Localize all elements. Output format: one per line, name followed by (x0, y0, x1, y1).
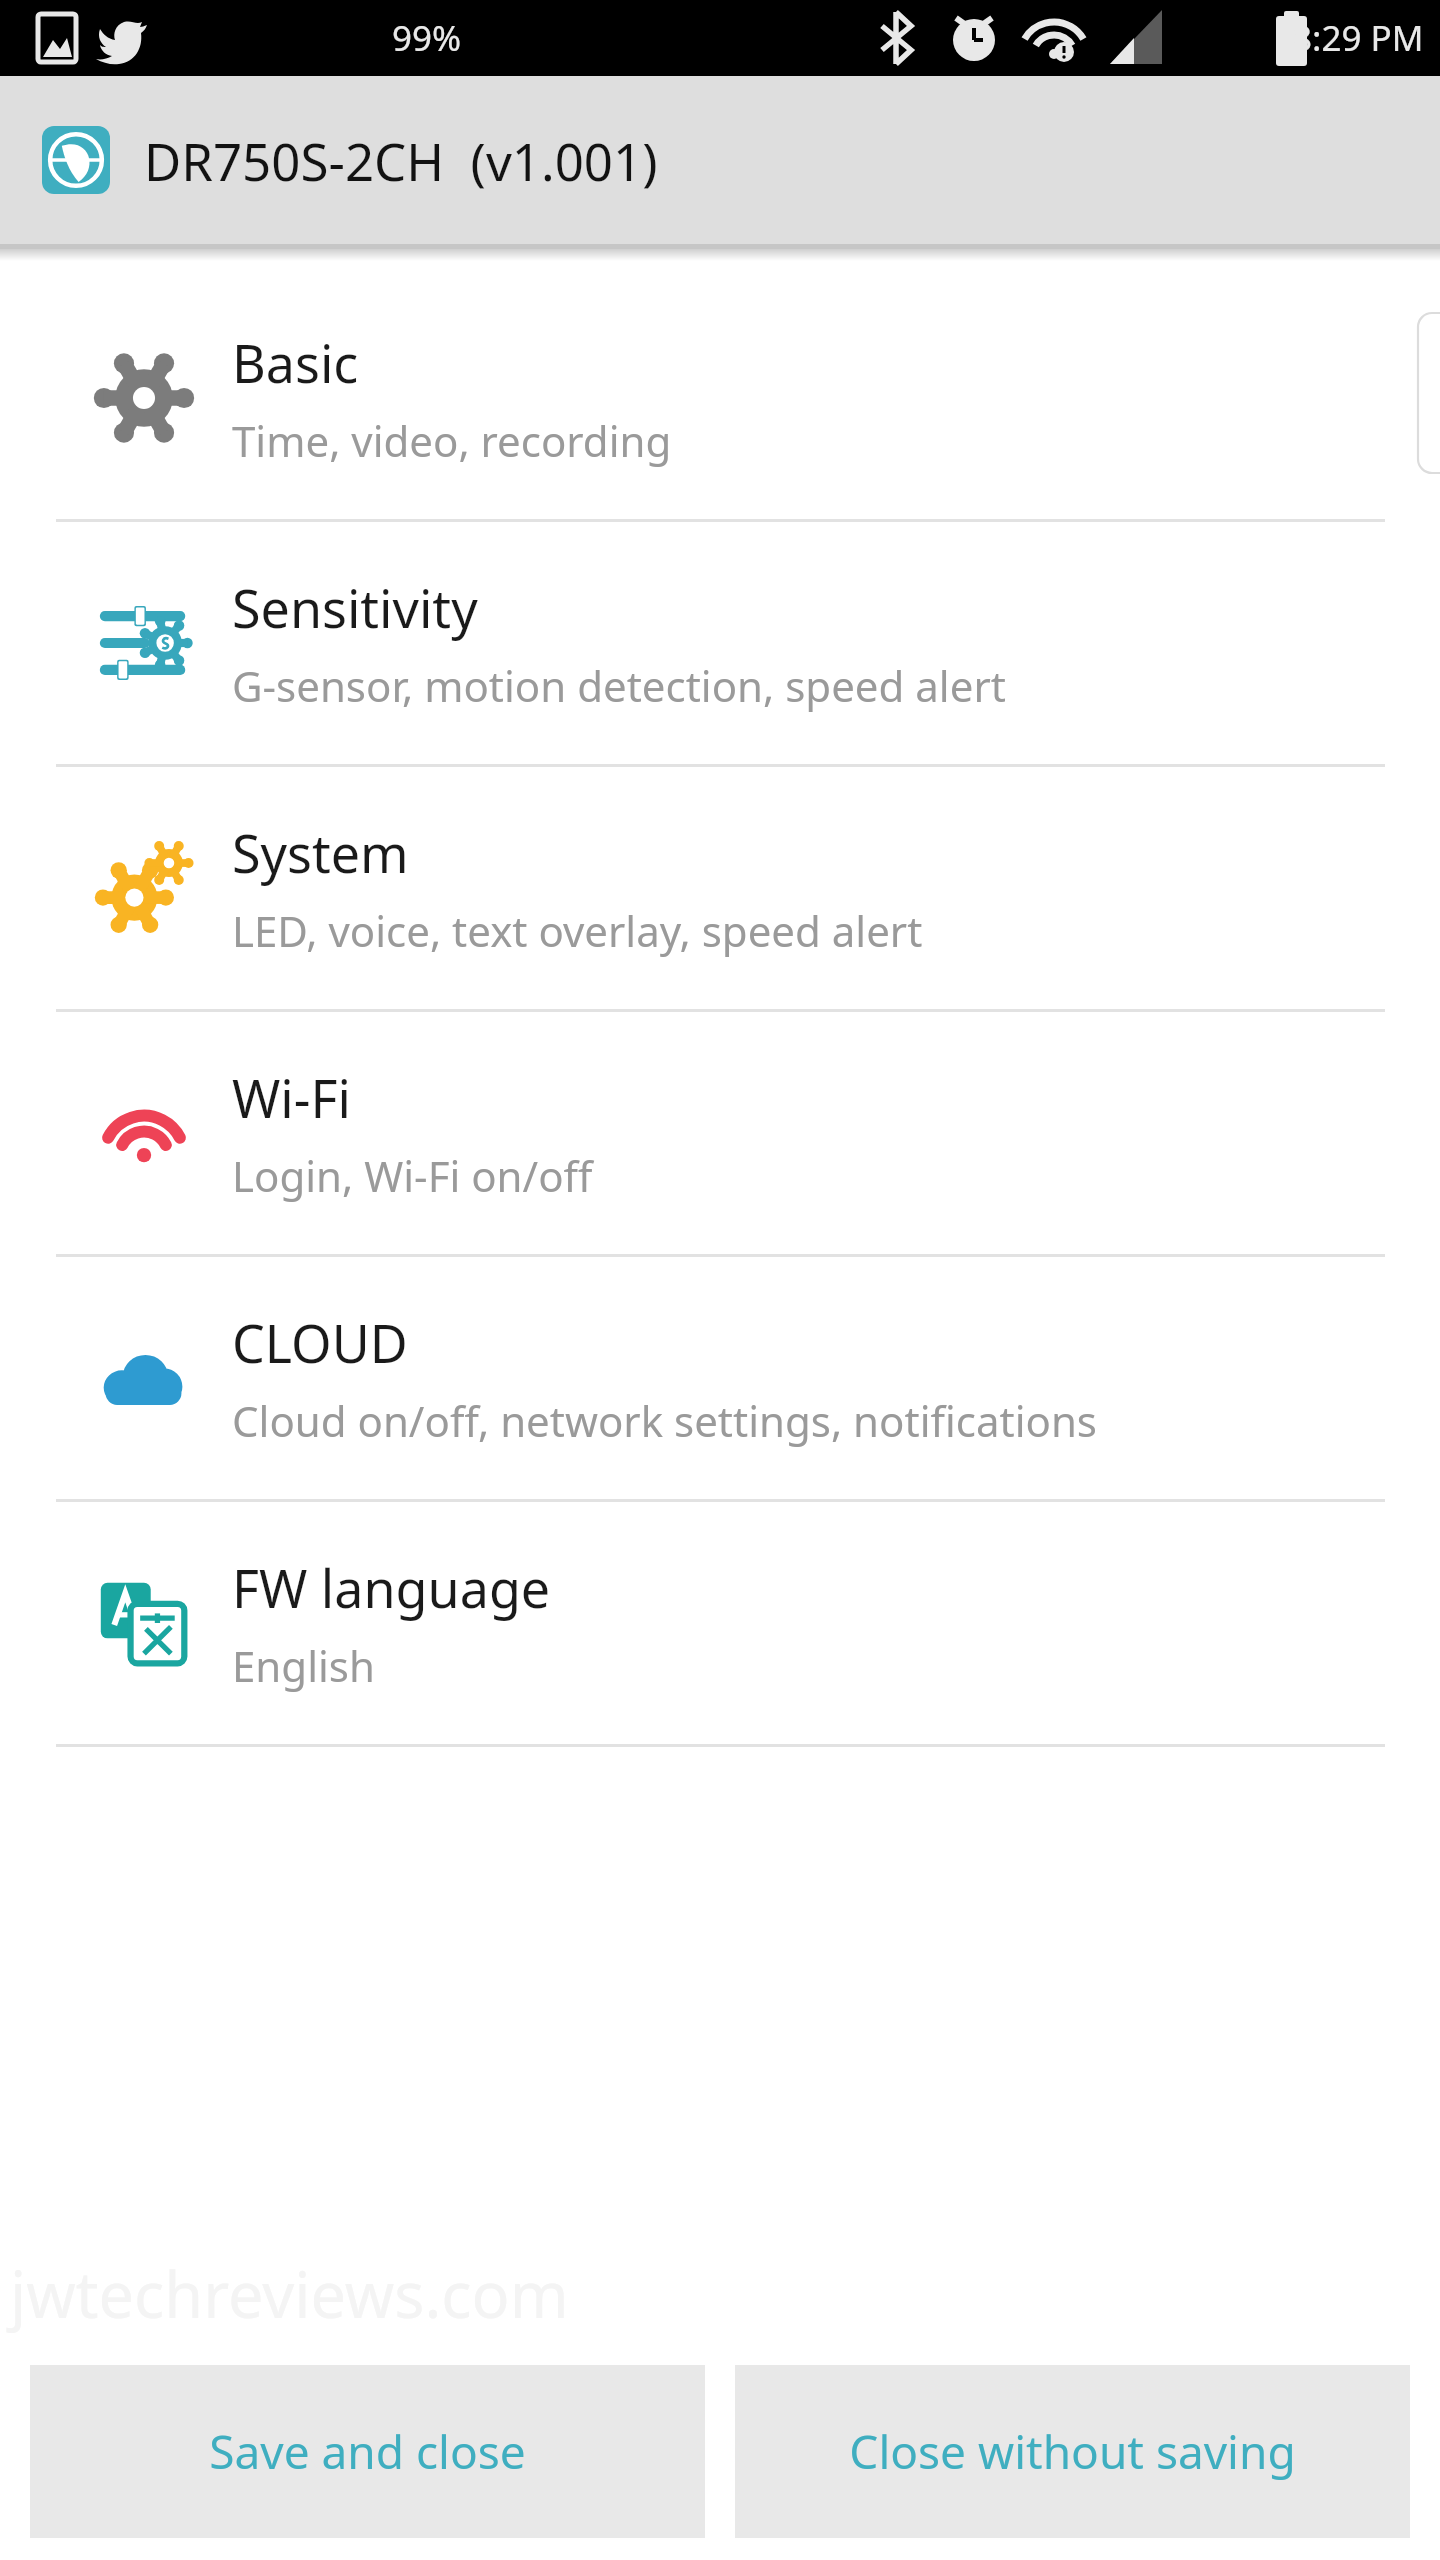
staticText: System (232, 817, 409, 888)
staticText: Close without saving (849, 2420, 1296, 2483)
staticText: LED, voice, text overlay, speed alert (232, 902, 923, 959)
staticText: Wi-Fi (232, 1062, 351, 1133)
staticText: Basic (232, 327, 359, 398)
button[interactable]: Wi-Fi (0, 1012, 1440, 1254)
staticText: DR750S-2CH (v1.001) (144, 126, 658, 195)
staticText: English (232, 1637, 375, 1694)
button[interactable]: Save and close (30, 2365, 705, 2538)
button[interactable]: CLOUD (0, 1257, 1440, 1499)
staticText: jwtechreviews.com (10, 2251, 569, 2337)
button[interactable]: Basic (0, 277, 1440, 519)
staticText: CLOUD (232, 1307, 408, 1378)
staticText: Login, Wi-Fi on/off (232, 1147, 593, 1204)
other: App logo (42, 126, 110, 194)
staticText: Sensitivity (232, 572, 478, 643)
staticText: FW language (232, 1552, 551, 1623)
button[interactable]: Close without saving (735, 2365, 1410, 2538)
staticText: 8:29 PM (1292, 14, 1424, 62)
button[interactable]: System (0, 767, 1440, 1009)
button[interactable]: FW language (0, 1502, 1440, 1744)
staticText: Cloud on/off, network settings, notifica… (232, 1392, 1097, 1449)
staticText: 99% (392, 14, 462, 62)
staticText: G-sensor, motion detection, speed alert (232, 657, 1006, 714)
button[interactable]: Sensitivity (0, 522, 1440, 764)
staticText: Time, video, recording (232, 412, 672, 469)
staticText: Save and close (209, 2420, 526, 2483)
